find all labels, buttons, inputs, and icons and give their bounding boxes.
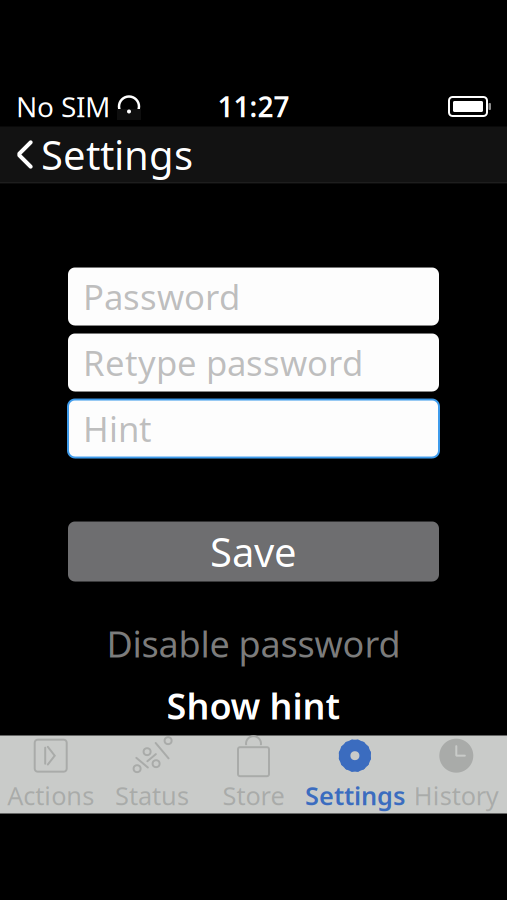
staticText: Save: [210, 525, 297, 578]
staticText: No SIM: [16, 88, 110, 125]
staticText: Status: [115, 779, 189, 812]
staticText: Hint: [83, 405, 152, 451]
button[interactable]: Settings: [304, 735, 406, 813]
button[interactable]: Disable password: [0, 621, 507, 665]
button[interactable]: Status: [101, 735, 203, 813]
staticText: Settings: [41, 128, 193, 181]
button[interactable]: Actions: [0, 735, 101, 813]
staticText: Show hint: [166, 682, 340, 729]
staticText: History: [414, 779, 499, 812]
button[interactable]: History: [406, 735, 507, 813]
staticText: 11:27: [217, 88, 289, 125]
staticText: Settings: [305, 779, 405, 812]
button[interactable]: Store: [203, 735, 304, 813]
staticText: Actions: [7, 779, 94, 812]
button[interactable]: Settings: [0, 126, 203, 182]
staticText: Retype password: [83, 339, 363, 385]
staticText: Password: [83, 273, 240, 319]
staticText: Disable password: [106, 620, 400, 667]
staticText: Store: [222, 779, 284, 812]
button[interactable]: Save: [68, 521, 439, 581]
button[interactable]: Show hint: [0, 683, 507, 727]
